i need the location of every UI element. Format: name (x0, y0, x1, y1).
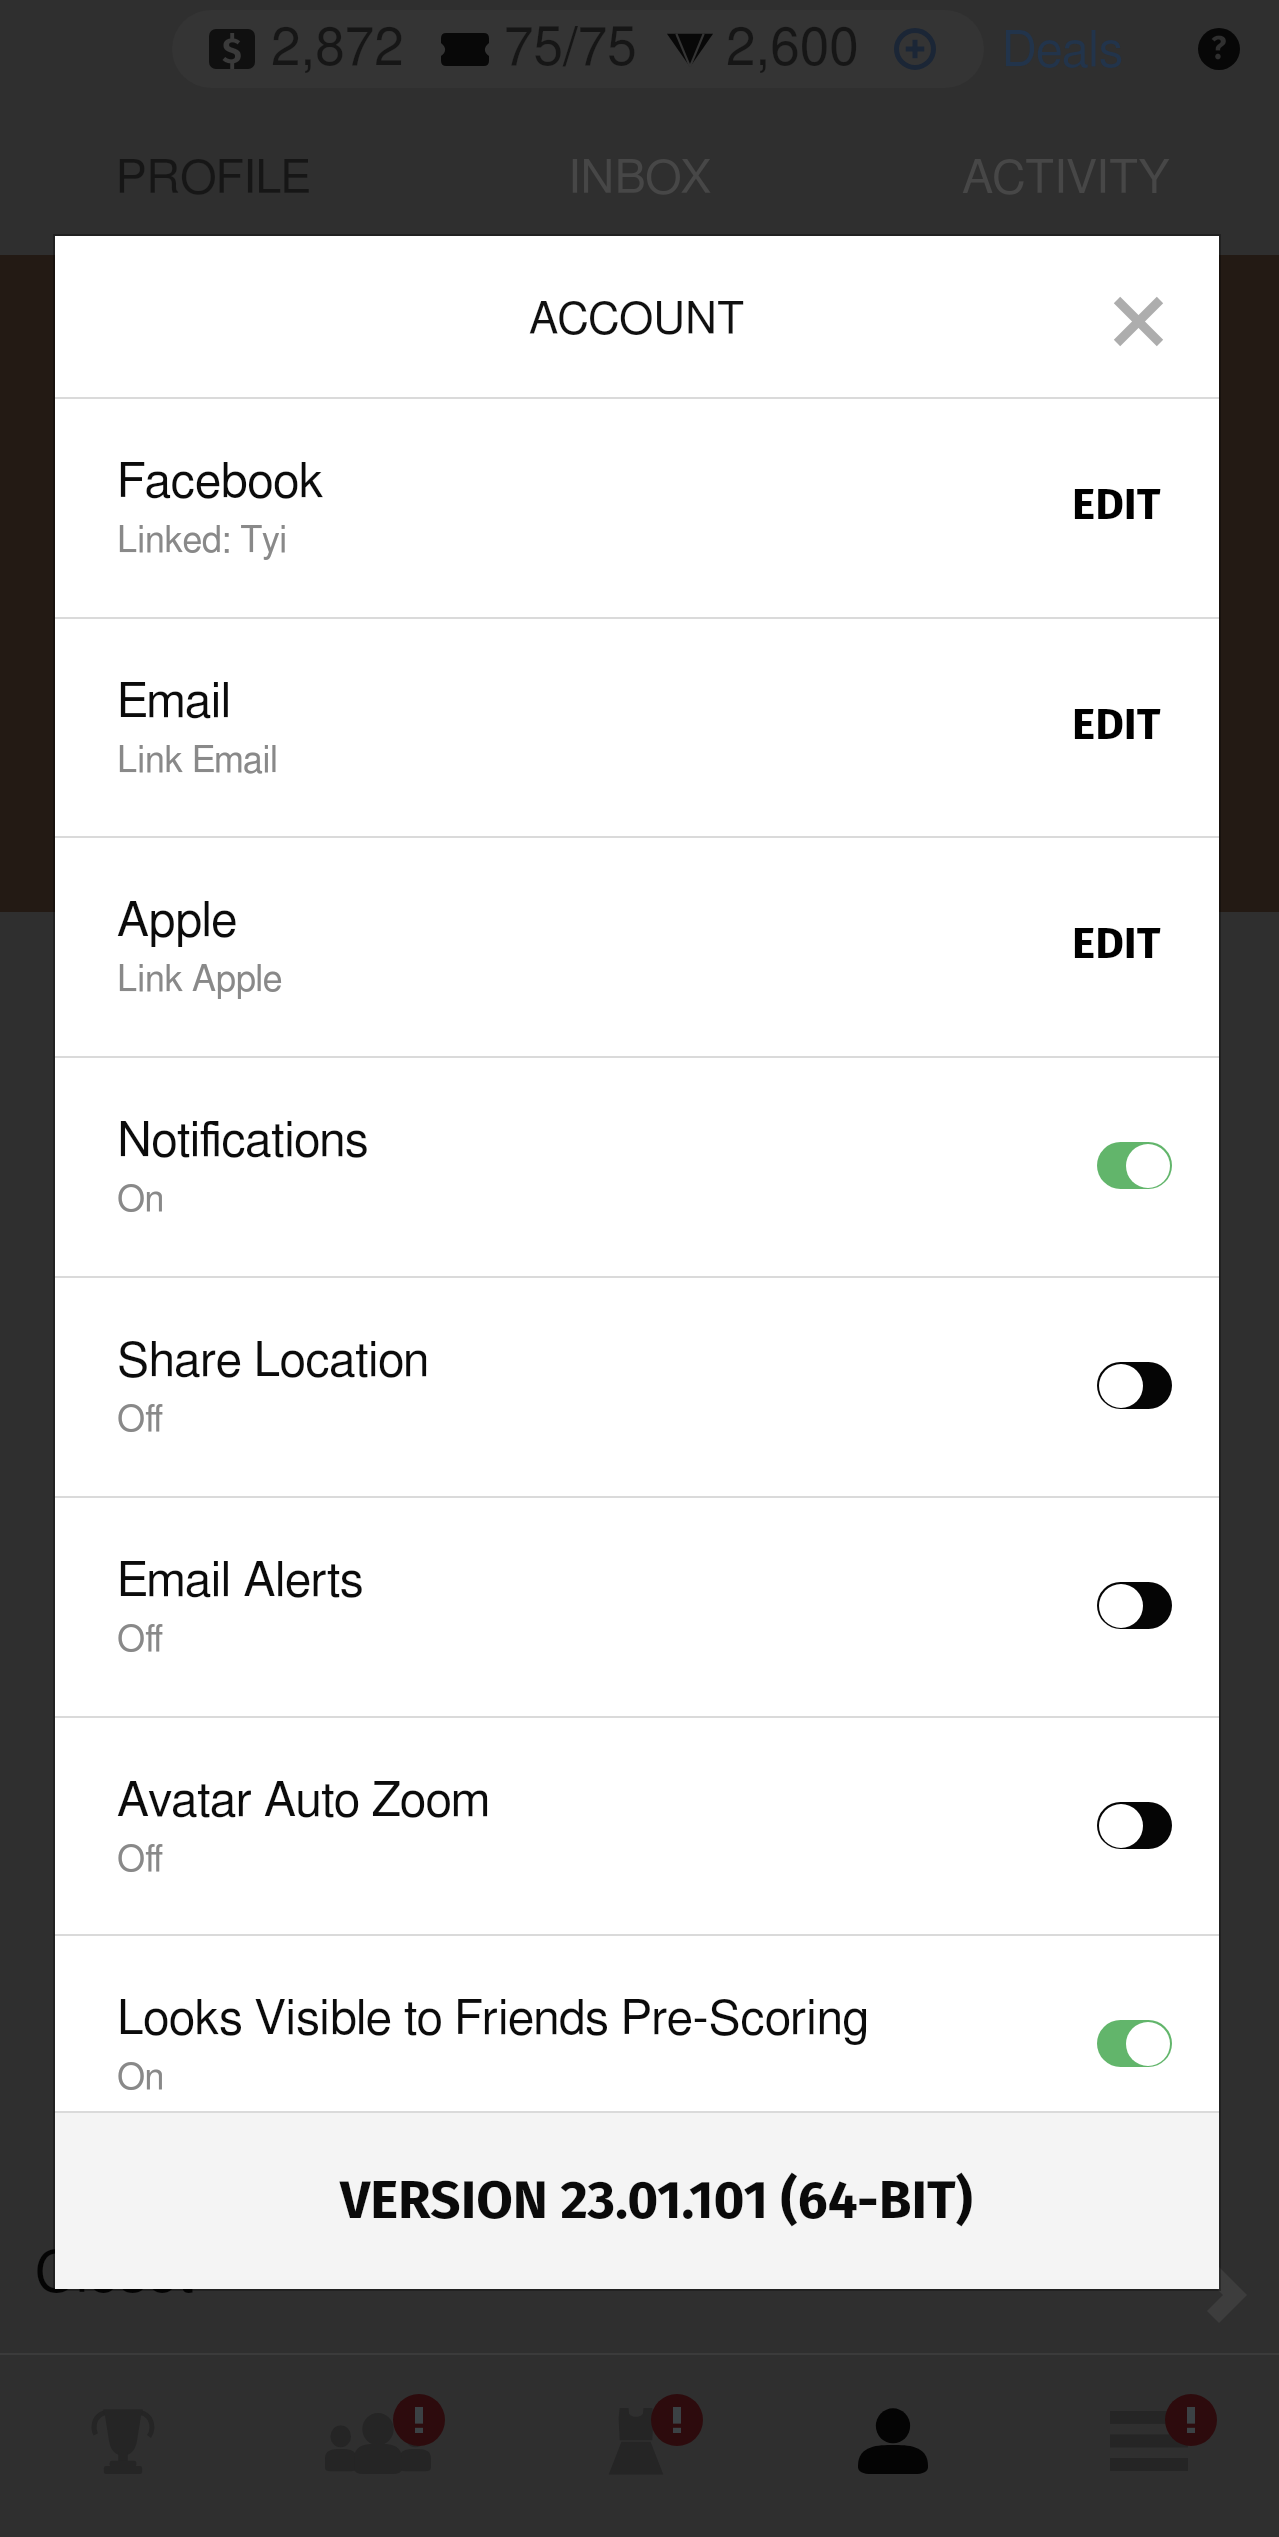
staticText: EDIT (1072, 917, 1161, 970)
button[interactable]: PROFILE (0, 141, 427, 215)
staticText: On (117, 1182, 165, 1218)
staticText: On (117, 2060, 165, 2096)
staticText: Link Email (117, 743, 278, 779)
staticText: Off (117, 1622, 164, 1658)
staticText: Email Alerts (117, 1558, 364, 1606)
button[interactable]: Add currency (894, 28, 936, 70)
button[interactable]: Help (1198, 28, 1240, 70)
button[interactable]: EDIT (1072, 478, 1161, 531)
button[interactable]: Apple (55, 838, 1219, 1056)
staticText: EDIT (1072, 698, 1161, 751)
button[interactable]: Close (1090, 271, 1182, 363)
button[interactable]: Profile (765, 2355, 1020, 2537)
button[interactable]: EDIT (1072, 698, 1161, 751)
button[interactable]: Notifications (55, 1058, 1219, 1276)
staticText: Off (117, 1842, 164, 1878)
staticText: Link Apple (117, 962, 283, 998)
button[interactable]: INBOX (427, 141, 853, 215)
button[interactable]: Closet (0, 2228, 1279, 2352)
staticText: Avatar Auto Zoom (117, 1778, 490, 1826)
staticText: Email (117, 679, 232, 727)
staticText: PROFILE (116, 155, 311, 202)
staticText: ACTIVITY (962, 155, 1171, 202)
button[interactable]: EDIT (1072, 917, 1161, 970)
staticText: Apple (117, 898, 238, 946)
button[interactable]: Switch on (1097, 2020, 1172, 2067)
button[interactable]: Email (55, 619, 1219, 836)
staticText: Off (117, 1402, 164, 1438)
staticText: Closet (35, 2246, 194, 2304)
button[interactable]: Facebook (55, 399, 1219, 617)
button[interactable]: Switch off (1097, 1362, 1172, 1409)
staticText: 2,872 (271, 23, 404, 76)
button[interactable]: Menu (1020, 2355, 1275, 2537)
button[interactable]: Looks Visible to Friends Pre-Scoring (55, 1936, 1219, 2111)
staticText: ACCOUNT (529, 298, 745, 342)
button[interactable]: Friends (255, 2355, 510, 2537)
button[interactable] (172, 10, 984, 88)
button[interactable]: Email Alerts (55, 1498, 1219, 1716)
staticText: Deals (1002, 28, 1123, 77)
button[interactable]: Looks (510, 2355, 765, 2537)
staticText: VERSION 23.01.101 (64-BIT) (340, 2168, 973, 2232)
staticText: Share Location (117, 1338, 430, 1386)
staticText: INBOX (568, 155, 712, 202)
staticText: Linked: Tyi (117, 523, 288, 559)
button[interactable]: ACTIVITY (853, 141, 1279, 215)
button[interactable]: Switch on (1097, 1142, 1172, 1189)
button[interactable]: Deals (1002, 28, 1123, 77)
staticText: $ (222, 29, 242, 69)
button[interactable]: Avatar Auto Zoom (55, 1718, 1219, 1934)
button[interactable]: Share Location (55, 1278, 1219, 1496)
staticText: ? (1211, 29, 1227, 67)
button[interactable]: Switch off (1097, 1802, 1172, 1849)
staticText: Facebook (117, 459, 324, 507)
button[interactable]: Switch off (1097, 1582, 1172, 1629)
staticText: 75/75 (504, 23, 637, 76)
staticText: Notifications (117, 1118, 369, 1166)
staticText: 2,600 (726, 23, 859, 76)
staticText: Looks Visible to Friends Pre-Scoring (117, 1996, 869, 2044)
staticText: EDIT (1072, 478, 1161, 531)
